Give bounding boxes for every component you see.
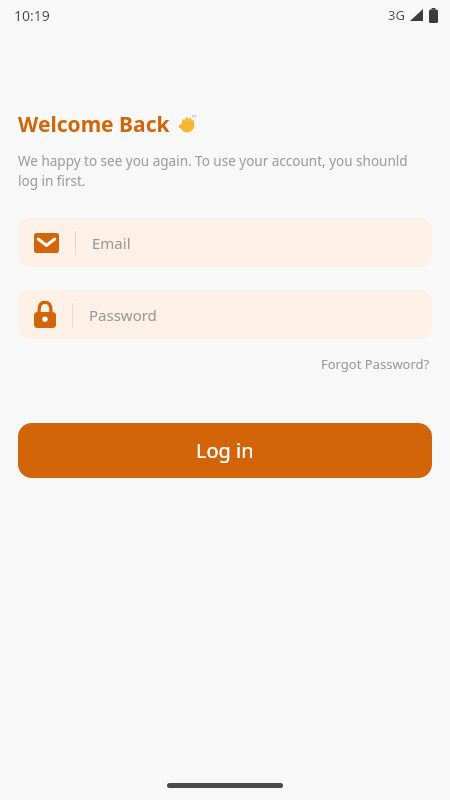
button[interactable]: Email (18, 218, 432, 267)
button[interactable]: Password (18, 290, 432, 339)
button[interactable]: Forgot Password? (319, 352, 432, 376)
other: Email (34, 233, 59, 253)
staticText: We happy to see you again. To use your a… (18, 152, 408, 190)
staticText: Welcome Back (18, 110, 170, 139)
staticText: Forgot Password? (321, 355, 430, 373)
button[interactable]: Log in (18, 423, 432, 478)
staticText: Log in (196, 437, 254, 464)
staticText: 10:19 (14, 6, 50, 25)
staticText: 3G (388, 6, 405, 24)
other: Password (34, 302, 56, 328)
staticText: Password (89, 305, 157, 325)
staticText: Email (92, 233, 131, 253)
